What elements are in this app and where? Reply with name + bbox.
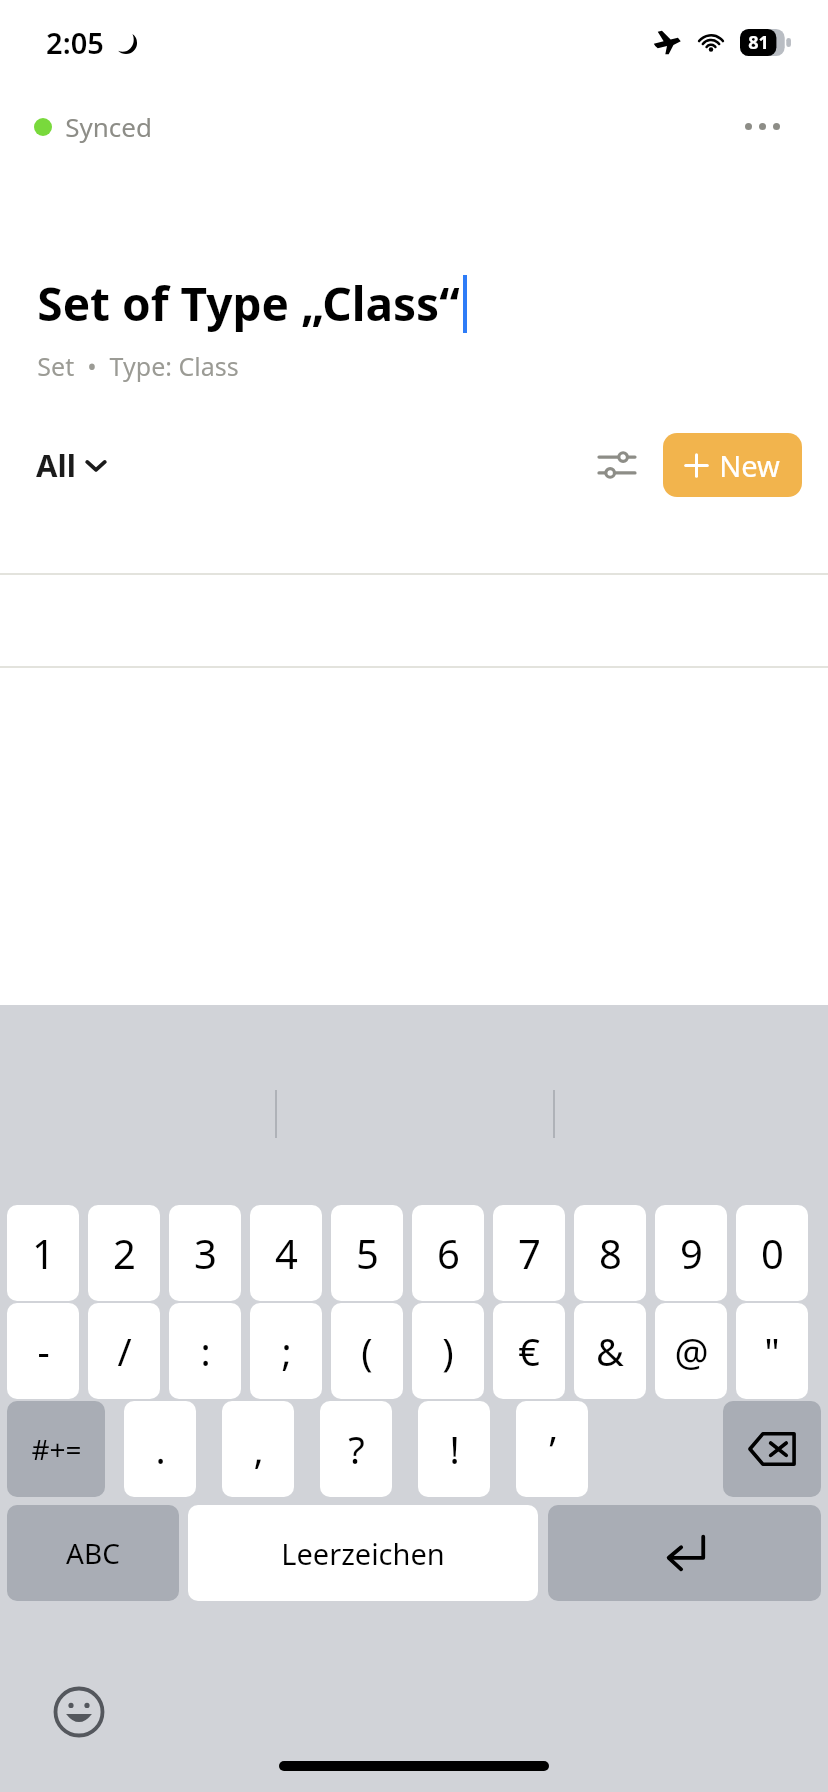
button[interactable]: / (88, 1303, 160, 1399)
button[interactable]: , (222, 1401, 294, 1497)
button[interactable]: 2 (88, 1205, 160, 1301)
staticText: 3 (194, 1226, 217, 1280)
staticText: ( (361, 1325, 373, 1377)
staticText: Leerzeichen (281, 1534, 445, 1573)
staticText: ) (442, 1325, 454, 1377)
staticText: New (719, 446, 780, 485)
button[interactable]: Emoji (50, 1683, 108, 1741)
staticText: 5 (356, 1226, 379, 1280)
staticText: #+= (31, 1430, 82, 1468)
button[interactable]: 4 (250, 1205, 322, 1301)
button[interactable]: All (28, 434, 115, 496)
staticText: 0 (761, 1226, 784, 1280)
staticText: 1 (32, 1226, 55, 1280)
button[interactable]: New (663, 433, 802, 497)
staticText: / (117, 1325, 132, 1377)
staticText: 4 (275, 1226, 298, 1280)
staticText: Set • Type: Class (37, 349, 239, 383)
button[interactable]: ABC (7, 1505, 179, 1601)
button[interactable]: " (736, 1303, 808, 1399)
button[interactable]: 6 (412, 1205, 484, 1301)
staticText: 6 (437, 1226, 460, 1280)
button[interactable]: More options (736, 100, 788, 152)
button[interactable]: ! (418, 1401, 490, 1497)
staticText: ’ (549, 1423, 556, 1475)
button[interactable]: 7 (493, 1205, 565, 1301)
staticText: Synced (65, 109, 152, 144)
staticText: , (253, 1423, 264, 1475)
button[interactable]: : (169, 1303, 241, 1399)
staticText: & (596, 1325, 624, 1377)
staticText: @ (674, 1325, 709, 1377)
button[interactable]: 5 (331, 1205, 403, 1301)
staticText: ! (449, 1423, 460, 1475)
staticText: 2 (113, 1226, 136, 1280)
staticText: ABC (66, 1534, 120, 1572)
button[interactable]: ( (331, 1303, 403, 1399)
button[interactable]: 3 (169, 1205, 241, 1301)
staticText: : (200, 1325, 211, 1377)
staticText: All (36, 444, 76, 486)
button[interactable]: ? (320, 1401, 392, 1497)
button[interactable]: Backspace (723, 1401, 821, 1497)
button[interactable]: 1 (7, 1205, 79, 1301)
staticText: Set of Type „Class“ (37, 272, 460, 335)
button[interactable]: ’ (516, 1401, 588, 1497)
staticText: ? (348, 1423, 365, 1475)
button[interactable]: . (124, 1401, 196, 1497)
staticText: € (518, 1325, 540, 1377)
button[interactable]: € (493, 1303, 565, 1399)
button[interactable]: 0 (736, 1205, 808, 1301)
staticText: 8 (599, 1226, 622, 1280)
button[interactable]: 8 (574, 1205, 646, 1301)
staticText: 9 (680, 1226, 703, 1280)
button[interactable]: Symbols (7, 1401, 105, 1497)
button[interactable]: ; (250, 1303, 322, 1399)
staticText: 2:05 (46, 23, 104, 62)
staticText: " (764, 1325, 780, 1377)
button[interactable]: & (574, 1303, 646, 1399)
staticText: ; (281, 1325, 292, 1377)
staticText: - (37, 1325, 50, 1377)
staticText: . (155, 1423, 166, 1475)
button[interactable]: Synced (28, 103, 158, 150)
button[interactable]: Filter (587, 435, 647, 495)
button[interactable]: @ (655, 1303, 727, 1399)
button[interactable]: - (7, 1303, 79, 1399)
staticText: 7 (518, 1226, 541, 1280)
button[interactable]: ) (412, 1303, 484, 1399)
button[interactable]: 9 (655, 1205, 727, 1301)
button[interactable]: Leerzeichen (188, 1505, 538, 1601)
button[interactable]: Return (548, 1505, 821, 1601)
staticText: 81 (748, 30, 769, 55)
